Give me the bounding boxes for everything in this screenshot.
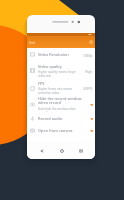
staticText: Set [29, 40, 36, 45]
staticText: Auto hide the window when recording [38, 107, 76, 112]
staticText: Open from camera [38, 128, 73, 133]
button[interactable]: Open from camera [27, 124, 95, 136]
button[interactable]: Video quality [27, 61, 95, 80]
staticText: Video quality [38, 64, 62, 69]
button[interactable]: Hide the record window when record [27, 96, 95, 112]
button[interactable]: Back [37, 146, 46, 155]
staticText: 1080p [83, 53, 93, 57]
staticText: Hide the record window when record [38, 96, 88, 106]
button[interactable]: Record audio [27, 112, 95, 124]
button[interactable]: Home [57, 146, 66, 155]
button[interactable]: Recents [76, 146, 85, 155]
staticText: Video Resolution [38, 52, 69, 57]
button[interactable]: Video Resolution [27, 48, 95, 61]
staticText: FPS [38, 81, 45, 86]
staticText: Record audio [38, 116, 63, 121]
staticText: Higher frame rate means smoother video [38, 87, 73, 95]
staticText: Higher quality means larger video size [38, 70, 76, 78]
button[interactable]: More options [88, 39, 94, 45]
staticText: High [85, 69, 93, 73]
staticText: 30FPS [83, 86, 93, 90]
button[interactable]: FPS [27, 80, 95, 96]
